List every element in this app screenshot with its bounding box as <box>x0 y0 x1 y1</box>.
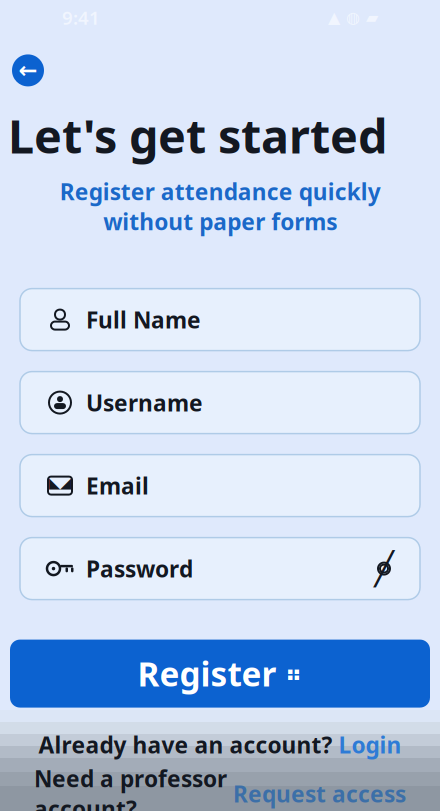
button[interactable]: ◣◢ <box>20 455 420 517</box>
staticText: Username <box>86 387 203 418</box>
staticText: Full Name <box>86 304 201 335</box>
staticText: Already have an account? <box>38 729 332 760</box>
staticText: Let's get started <box>8 104 387 166</box>
staticText: Request access <box>233 778 406 809</box>
button[interactable]: Full Name <box>20 289 420 351</box>
staticText: Register <box>137 651 276 696</box>
staticText: ◣◢ <box>49 474 71 491</box>
button[interactable]: Already have an account? <box>0 730 440 760</box>
button[interactable]: Password <box>20 538 420 600</box>
staticText: Login <box>338 729 401 760</box>
staticText: ╱ <box>374 550 393 587</box>
button[interactable]: Username <box>20 372 420 434</box>
staticText: Password <box>86 553 193 584</box>
staticText: ← <box>18 57 37 83</box>
button[interactable]: Back <box>6 48 50 92</box>
staticText: ⠶ <box>284 661 302 686</box>
staticText: 9:41 <box>62 5 100 30</box>
staticText: Need a professor account? <box>34 763 227 811</box>
staticText: Register attendance quickly without pape… <box>59 176 380 237</box>
staticText: ▲ ◍ ▰ <box>328 8 378 26</box>
staticText: Email <box>86 470 149 501</box>
button[interactable]: Register <box>10 640 430 708</box>
button[interactable]: Need a professor account? <box>0 779 440 809</box>
